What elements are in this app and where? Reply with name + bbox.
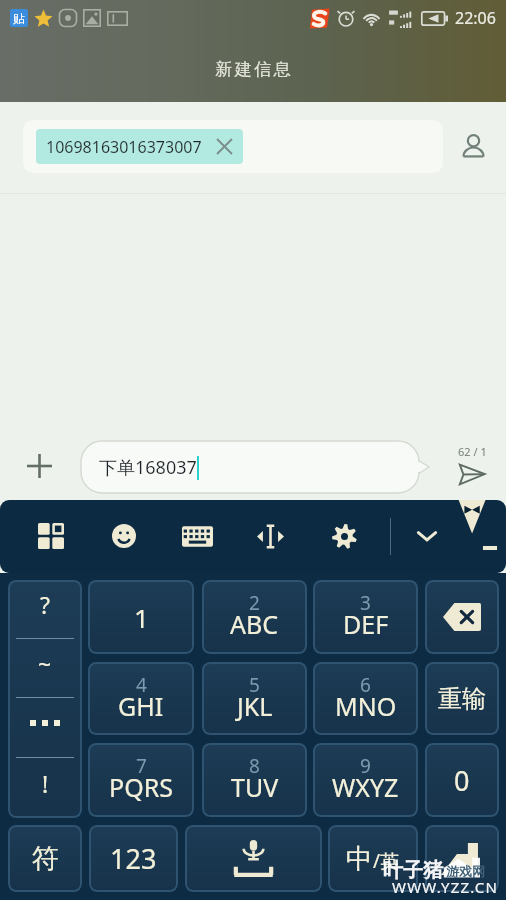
- button[interactable]: Emoji: [101, 513, 147, 559]
- staticText: ~: [38, 648, 52, 679]
- button[interactable]: 6: [313, 662, 418, 735]
- staticText: 2: [249, 590, 260, 616]
- staticText: !: [42, 768, 49, 799]
- button[interactable]: [425, 580, 499, 654]
- staticText: 符: [32, 842, 59, 876]
- staticText: TUV: [231, 770, 279, 804]
- staticText: 贴: [13, 11, 25, 26]
- staticText: 5: [249, 672, 260, 698]
- staticText: 123: [110, 840, 157, 877]
- staticText: ?: [40, 589, 50, 620]
- button[interactable]: 5: [202, 662, 307, 735]
- button[interactable]: Collapse keyboard: [404, 513, 450, 559]
- staticText: 游戏网: [446, 863, 485, 879]
- staticText: WWW.YZZ.CN: [392, 877, 499, 897]
- button[interactable]: Settings: [321, 513, 367, 559]
- button[interactable]: 中: [328, 825, 418, 892]
- button[interactable]: [185, 825, 322, 892]
- staticText: 22:06: [455, 7, 496, 29]
- staticText: PQRS: [109, 770, 173, 804]
- button[interactable]: !: [8, 758, 82, 818]
- button[interactable]: Send message: [448, 440, 496, 492]
- staticText: 1: [134, 600, 149, 635]
- button[interactable]: Move cursor: [247, 513, 293, 559]
- staticText: 7: [136, 753, 147, 779]
- staticText: 4: [136, 672, 147, 698]
- staticText: 62 / 1: [458, 444, 487, 459]
- staticText: 下单168037: [99, 455, 197, 480]
- staticText: 9: [360, 753, 371, 779]
- button[interactable]: 2: [202, 580, 307, 654]
- button[interactable]: 9: [313, 743, 418, 817]
- staticText: MNO: [335, 689, 397, 723]
- button[interactable]: ?: [8, 580, 82, 639]
- staticText: 中: [346, 842, 373, 876]
- button[interactable]: 符: [8, 825, 82, 892]
- button[interactable]: 3: [313, 580, 418, 654]
- button[interactable]: Add attachment: [17, 443, 62, 488]
- button[interactable]: Pick contact: [451, 128, 495, 166]
- button[interactable]: Keyboard: [174, 513, 220, 559]
- button[interactable]: [8, 698, 82, 758]
- staticText: 新建信息: [214, 59, 292, 80]
- staticText: 6: [360, 672, 371, 698]
- staticText: GHI: [118, 689, 164, 723]
- staticText: 0: [454, 762, 470, 799]
- button[interactable]: 10698163016373007: [23, 120, 443, 173]
- staticText: 叶子猪: [383, 858, 443, 883]
- staticText: /英: [373, 848, 400, 874]
- button[interactable]: 123: [89, 825, 178, 892]
- staticText: JKL: [237, 689, 273, 723]
- staticText: DEF: [343, 607, 389, 641]
- staticText: ABC: [230, 607, 279, 641]
- button[interactable]: 8: [202, 743, 307, 817]
- button[interactable]: 7: [88, 743, 194, 817]
- staticText: 10698163016373007: [46, 136, 202, 158]
- button[interactable]: 4: [88, 662, 194, 735]
- staticText: 重输: [438, 684, 486, 714]
- staticText: WXYZ: [332, 770, 399, 804]
- button[interactable]: [425, 825, 499, 892]
- button[interactable]: 1: [88, 580, 194, 654]
- button[interactable]: 0: [425, 743, 499, 817]
- button[interactable]: Keyboard layouts: [28, 513, 74, 559]
- button[interactable]: 重输: [425, 662, 499, 735]
- button[interactable]: ~: [8, 639, 82, 698]
- staticText: 3: [360, 590, 371, 616]
- staticText: 8: [249, 753, 260, 779]
